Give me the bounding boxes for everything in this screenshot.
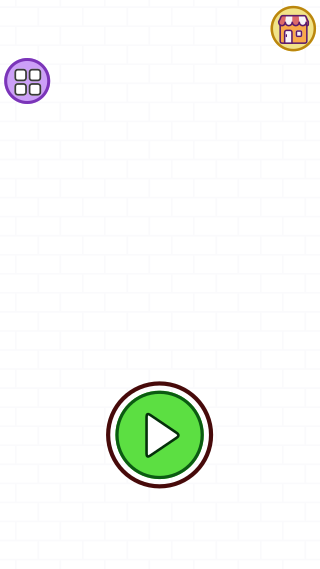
button[interactable]: Levels — [4, 58, 50, 104]
button[interactable]: Play — [106, 381, 213, 488]
button[interactable]: Shop — [271, 6, 316, 51]
